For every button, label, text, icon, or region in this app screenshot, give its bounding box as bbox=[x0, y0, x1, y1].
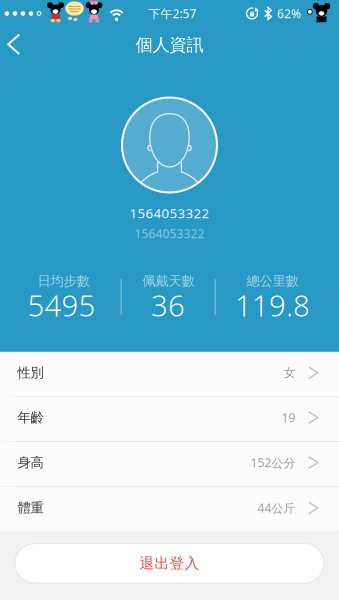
staticText: 女 bbox=[283, 365, 295, 380]
staticText: 44公斤 bbox=[257, 500, 295, 516]
staticText: 119.8 bbox=[235, 285, 310, 324]
staticText: 下午2:57 bbox=[148, 5, 196, 21]
staticText: 日均步數 bbox=[37, 273, 89, 289]
staticText: 個人資訊 bbox=[135, 34, 203, 56]
staticText: 性別 bbox=[17, 365, 43, 381]
staticText: 退出登入 bbox=[139, 554, 199, 572]
staticText: 年齡 bbox=[17, 409, 43, 426]
staticText: 總公里數 bbox=[246, 273, 298, 289]
staticText: 體重 bbox=[17, 500, 43, 516]
staticText: 1564053322 bbox=[134, 225, 204, 241]
staticText: 1564053322 bbox=[129, 204, 209, 222]
button[interactable]: 退出登入 bbox=[15, 543, 324, 583]
staticText: 62% bbox=[277, 5, 301, 21]
staticText: 5495 bbox=[27, 285, 95, 324]
staticText: 身高 bbox=[17, 454, 43, 471]
staticText: 19 bbox=[281, 409, 295, 425]
button[interactable]: 體重 bbox=[0, 487, 339, 531]
button[interactable]: Back bbox=[0, 24, 31, 64]
staticText: 152公分 bbox=[250, 455, 295, 471]
staticText: 36 bbox=[151, 285, 185, 324]
button[interactable]: 性別 bbox=[0, 352, 339, 396]
staticText: 佩戴天數 bbox=[142, 273, 194, 289]
button[interactable]: 身高 bbox=[0, 442, 339, 486]
button[interactable]: 年齡 bbox=[0, 396, 339, 441]
